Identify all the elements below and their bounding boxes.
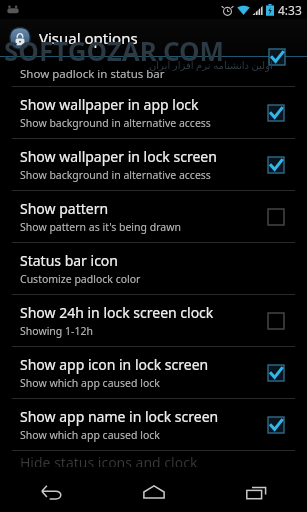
staticText: Show 24h in lock screen clock bbox=[20, 303, 214, 322]
staticText: Visual options bbox=[39, 28, 138, 48]
button[interactable]: Show wallpaper in lock screen bbox=[0, 139, 307, 190]
staticText: Show background in alternative access bbox=[20, 168, 211, 182]
button[interactable]: Recent apps bbox=[205, 472, 307, 512]
button[interactable]: Show 24h in lock screen clock bbox=[259, 304, 293, 338]
staticText: Show pattern as it's being drawn bbox=[20, 220, 181, 234]
button[interactable]: Show wallpaper in lock screen bbox=[259, 148, 293, 182]
staticText: Customize padlock color bbox=[20, 272, 141, 286]
staticText: SOFTGOZAR.COM bbox=[4, 33, 225, 68]
button[interactable]: Show app name in lock screen bbox=[0, 399, 307, 450]
staticText: Status bar icon bbox=[20, 251, 118, 270]
button[interactable]: Show wallpaper in app lock bbox=[259, 96, 293, 130]
button[interactable]: Show pattern bbox=[259, 200, 293, 234]
staticText: Show background in alternative access bbox=[20, 116, 211, 130]
staticText: Show app icon in lock screen bbox=[20, 355, 209, 374]
staticText: Show padlock in status bar bbox=[20, 66, 165, 82]
staticText: اولین دانشنامه نرم افزار ایران bbox=[149, 58, 273, 72]
button[interactable]: Show 24h in lock screen clock bbox=[0, 295, 307, 346]
button[interactable]: Show app icon in lock screen bbox=[259, 356, 293, 390]
button[interactable]: Status bar icon bbox=[0, 243, 307, 294]
button[interactable]: Show wallpaper in app lock bbox=[0, 87, 307, 138]
button[interactable]: Show pattern bbox=[0, 191, 307, 242]
button[interactable]: Show padlock in status bar bbox=[0, 57, 307, 87]
staticText: Show wallpaper in app lock bbox=[20, 95, 199, 114]
button[interactable]: Home bbox=[103, 472, 205, 512]
button[interactable]: Back bbox=[0, 472, 103, 512]
staticText: Show app name in lock screen bbox=[20, 407, 219, 426]
button[interactable]: Visual options bbox=[7, 25, 144, 51]
staticText: Showing 1-12h bbox=[20, 324, 93, 338]
staticText: Show wallpaper in lock screen bbox=[20, 147, 217, 166]
staticText: Show which app caused lock bbox=[20, 376, 160, 390]
button[interactable]: Show app name in lock screen bbox=[259, 408, 293, 442]
button[interactable]: Show app icon in lock screen bbox=[0, 347, 307, 398]
staticText: 4:33 bbox=[278, 2, 302, 18]
button[interactable]: Hide status icons and clock bbox=[0, 451, 307, 467]
staticText: Show which app caused lock bbox=[20, 428, 160, 442]
staticText: Show pattern bbox=[20, 199, 109, 218]
staticText: Hide status icons and clock bbox=[20, 453, 198, 467]
